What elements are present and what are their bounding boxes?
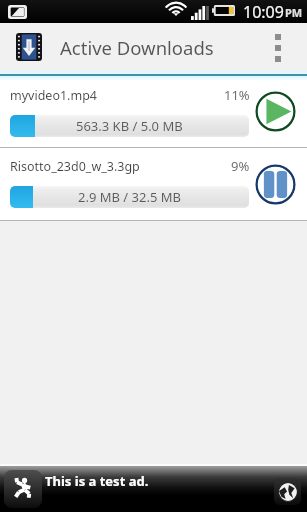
button[interactable]: myvideo1.mp4: [0, 76, 307, 147]
button[interactable]: Resume: [255, 91, 296, 132]
staticText: This is a test ad.: [45, 472, 149, 490]
staticText: 10:09: [243, 1, 284, 23]
staticText: 563.3 KB / 5.0 MB: [76, 117, 183, 135]
button[interactable]: More options: [264, 23, 307, 71]
button[interactable]: Pause: [255, 164, 296, 205]
staticText: Active Downloads: [60, 35, 214, 60]
button[interactable]: This is a test ad.: [0, 466, 307, 512]
staticText: myvideo1.mp4: [10, 87, 97, 104]
staticText: 11%: [224, 86, 250, 104]
button[interactable]: Risotto_23d0_w_3.3gp: [0, 148, 307, 220]
staticText: PM: [285, 5, 303, 20]
staticText: 2.9 MB / 32.5 MB: [78, 188, 181, 206]
staticText: Risotto_23d0_w_3.3gp: [10, 158, 140, 175]
button[interactable]: Open ad link: [274, 478, 301, 505]
staticText: 9%: [231, 157, 250, 175]
